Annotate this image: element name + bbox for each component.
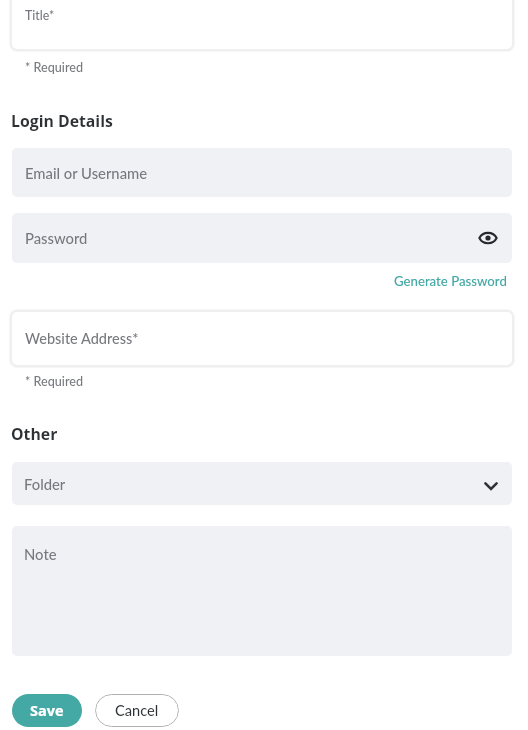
- button[interactable]: Email or Username: [12, 148, 512, 197]
- button[interactable]: Cancel: [95, 694, 179, 727]
- button[interactable]: Generate Password: [394, 273, 507, 289]
- staticText: Website Address*: [25, 330, 139, 347]
- staticText: Login Details: [11, 110, 113, 132]
- button[interactable]: Toggle password visibility: [477, 227, 499, 249]
- staticText: Save: [30, 701, 64, 721]
- staticText: Generate Password: [394, 273, 507, 289]
- button[interactable]: Title*: [12, 0, 512, 49]
- staticText: Title*: [25, 8, 55, 23]
- button[interactable]: Note: [12, 526, 512, 656]
- button[interactable]: Password: [12, 213, 512, 263]
- staticText: Cancel: [115, 702, 159, 720]
- staticText: Note: [24, 545, 57, 563]
- button[interactable]: Select folder: [483, 478, 499, 494]
- button[interactable]: Website Address*: [12, 312, 512, 365]
- staticText: Other: [11, 423, 58, 445]
- staticText: Folder: [24, 475, 66, 493]
- button[interactable]: Save: [12, 694, 82, 727]
- staticText: * Required: [25, 60, 84, 75]
- staticText: Password: [25, 229, 88, 247]
- staticText: * Required: [25, 374, 84, 389]
- staticText: Email or Username: [25, 164, 148, 182]
- button[interactable]: Folder: [12, 462, 512, 505]
